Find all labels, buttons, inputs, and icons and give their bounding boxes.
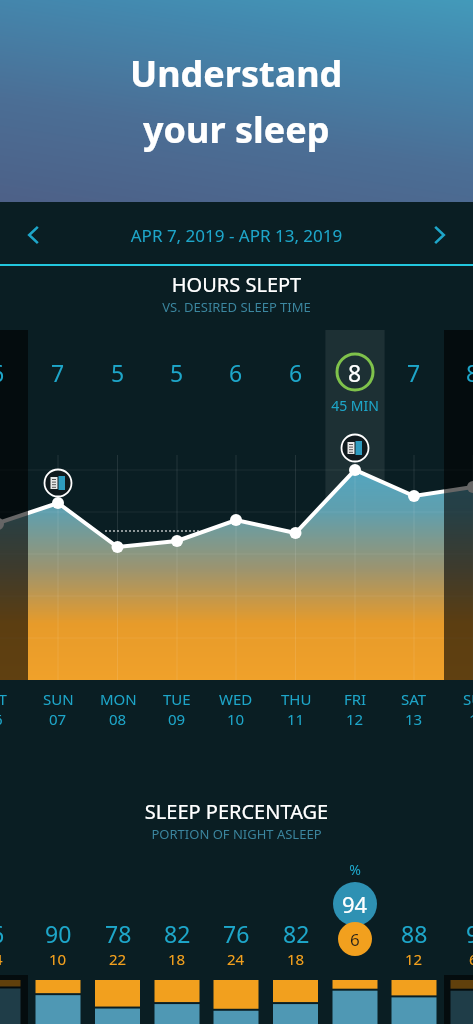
staticText: HOURS SLEPT (0, 271, 473, 298)
staticText: 13 (405, 709, 423, 729)
button[interactable]: 94 (333, 882, 377, 926)
staticText: FRI (344, 689, 367, 709)
staticText: 9 (466, 918, 473, 949)
staticText: THU (281, 689, 312, 709)
staticText: SLEEP PERCENTAGE (0, 798, 473, 825)
staticText: your sleep (143, 105, 330, 154)
button[interactable]: TUE (147, 689, 207, 729)
staticText: 76 (223, 918, 250, 949)
staticText: 6 (350, 928, 360, 951)
button[interactable]: 9 (443, 918, 473, 969)
staticText: 5 (170, 357, 184, 388)
button[interactable]: 8 (333, 350, 377, 394)
staticText: 4 (0, 949, 3, 969)
staticText: Understand (130, 49, 343, 98)
staticText: 5 (111, 357, 125, 388)
button[interactable]: SAT (384, 689, 444, 729)
button[interactable]: 90 (28, 918, 88, 969)
staticText: 7 (51, 357, 65, 388)
staticText: 88 (401, 918, 428, 949)
button[interactable]: 6 (274, 350, 318, 394)
button[interactable]: 5 (155, 350, 199, 394)
staticText: VS. DESIRED SLEEP TIME (0, 298, 473, 316)
button[interactable]: 6 (214, 350, 258, 394)
staticText: 24 (227, 949, 245, 969)
button[interactable]: Sleep log entry (340, 433, 370, 463)
button[interactable]: 76 (206, 918, 266, 969)
button[interactable]: THU (266, 689, 326, 729)
staticText: 94 (342, 889, 368, 919)
staticText: 90 (45, 918, 72, 949)
button[interactable]: 6 (0, 918, 28, 969)
staticText: 11 (287, 709, 305, 729)
staticText: 6 (289, 357, 303, 388)
staticText: PORTION OF NIGHT ASLEEP (0, 825, 473, 843)
staticText: 10 (227, 709, 245, 729)
button[interactable]: 88 (384, 918, 444, 969)
staticText: 22 (109, 949, 127, 969)
staticText: 78 (105, 918, 132, 949)
button[interactable]: 82 (266, 918, 326, 969)
staticText: SU (463, 689, 473, 709)
staticText: SUN (43, 689, 74, 709)
staticText: % (325, 860, 385, 879)
button[interactable]: 7 (36, 350, 80, 394)
staticText: 09 (168, 709, 186, 729)
button[interactable]: APR 7, 2019 - APR 13, 2019 (0, 224, 473, 248)
staticText: 6 (0, 709, 3, 729)
button[interactable]: AT (0, 689, 28, 729)
button[interactable]: 8 (451, 350, 473, 394)
button[interactable]: 6 (338, 922, 372, 956)
staticText: SAT (401, 689, 427, 709)
staticText: MON (100, 689, 137, 709)
staticText: 8 (466, 357, 473, 388)
staticText: APR 7, 2019 - APR 13, 2019 (0, 224, 473, 247)
staticText: 6 (229, 357, 243, 388)
staticText: 7 (407, 357, 421, 388)
button[interactable]: SU (443, 689, 473, 729)
staticText: 12 (405, 949, 423, 969)
button[interactable]: 6 (0, 350, 20, 394)
staticText: 82 (164, 918, 191, 949)
staticText: 08 (109, 709, 127, 729)
button[interactable]: Next week (415, 211, 463, 259)
staticText: AT (0, 689, 7, 709)
staticText: TUE (163, 689, 191, 709)
button[interactable]: 7 (392, 350, 436, 394)
staticText: 6 (0, 357, 5, 388)
staticText: 8 (348, 357, 362, 388)
staticText: 12 (346, 709, 364, 729)
button[interactable]: WED (206, 689, 266, 729)
button[interactable]: FRI (325, 689, 385, 729)
button[interactable]: Previous week (10, 211, 58, 259)
staticText: 07 (49, 709, 67, 729)
staticText: 10 (49, 949, 67, 969)
button[interactable]: 82 (147, 918, 207, 969)
staticText: 82 (283, 918, 310, 949)
staticText: WED (219, 689, 253, 709)
staticText: 1 (469, 709, 473, 729)
staticText: 6 (469, 949, 473, 969)
staticText: 6 (0, 918, 5, 949)
staticText: 18 (168, 949, 186, 969)
staticText: 18 (287, 949, 305, 969)
button[interactable]: 78 (88, 918, 148, 969)
button[interactable]: MON (88, 689, 148, 729)
staticText: 45 MIN (315, 396, 395, 415)
button[interactable]: SUN (28, 689, 88, 729)
button[interactable]: Sleep log entry (43, 468, 73, 498)
button[interactable]: 5 (96, 350, 140, 394)
